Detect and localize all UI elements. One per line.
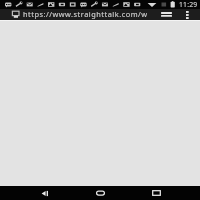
button[interactable]: More options — [181, 9, 194, 20]
button[interactable]: Recent apps — [145, 186, 168, 200]
button[interactable]: https://www.straighttalk.com/w — [23, 9, 148, 19]
button[interactable]: Site information — [12, 11, 20, 19]
button[interactable]: Home — [89, 186, 112, 200]
button[interactable]: Back — [34, 186, 57, 200]
staticText: 11:29 — [179, 0, 198, 9]
button[interactable]: Tabs — [158, 9, 175, 20]
